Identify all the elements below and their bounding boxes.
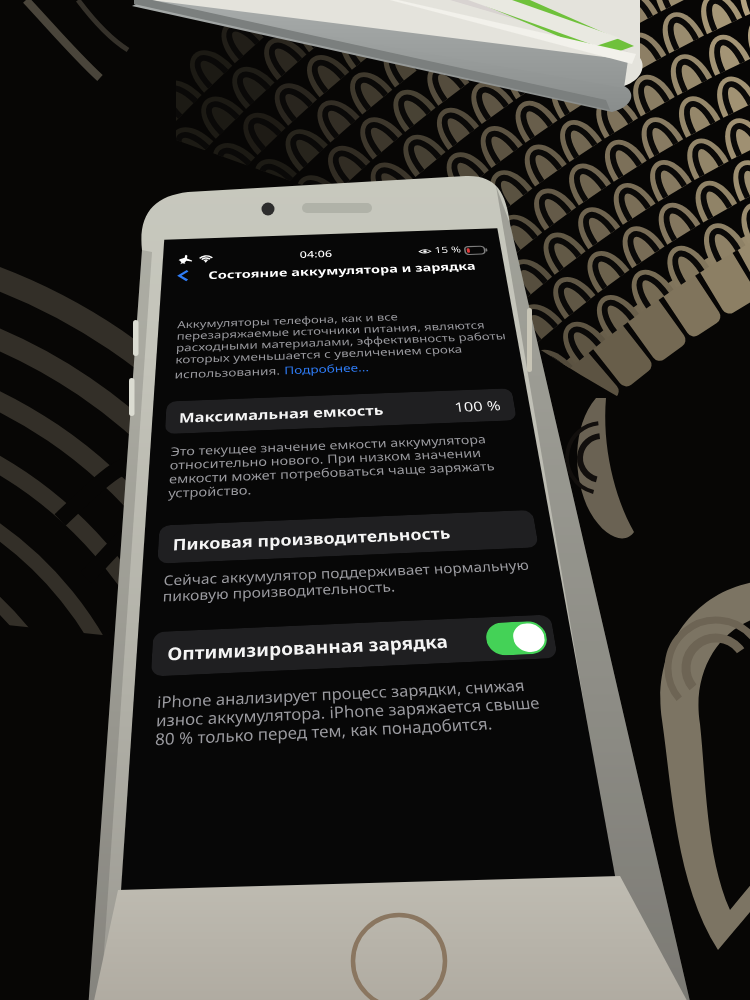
staticText: Состояние аккумулятора и зарядка: [208, 258, 477, 282]
button[interactable]: Пиковая производительность: [157, 510, 539, 564]
button[interactable]: Максимальная емкость: [165, 388, 517, 434]
staticText: Сейчас аккумулятор поддерживает нормальн…: [162, 555, 534, 606]
staticText: Оптимизированная зарядка: [167, 629, 450, 666]
button[interactable]: Оптимизированная зарядка: [151, 614, 558, 677]
staticText: Это текущее значение емкости аккумулятор…: [168, 431, 498, 502]
staticText: 04:06: [299, 247, 333, 260]
staticText: Пиковая производительность: [172, 522, 452, 555]
button[interactable]: Оптимизированная зарядка, включено: [484, 620, 549, 656]
staticText: iPhone анализирует процесс зарядки, сниж…: [154, 674, 544, 751]
staticText: Максимальная емкость: [178, 400, 385, 427]
button[interactable]: Подробнее...: [284, 360, 370, 377]
staticText: 100 %: [453, 396, 503, 416]
staticText: использования.: [174, 363, 284, 381]
staticText: 15 %: [434, 243, 462, 256]
button[interactable]: Назад: [172, 267, 195, 284]
staticText: Аккумуляторы телефона, как и все перезар…: [175, 306, 509, 367]
